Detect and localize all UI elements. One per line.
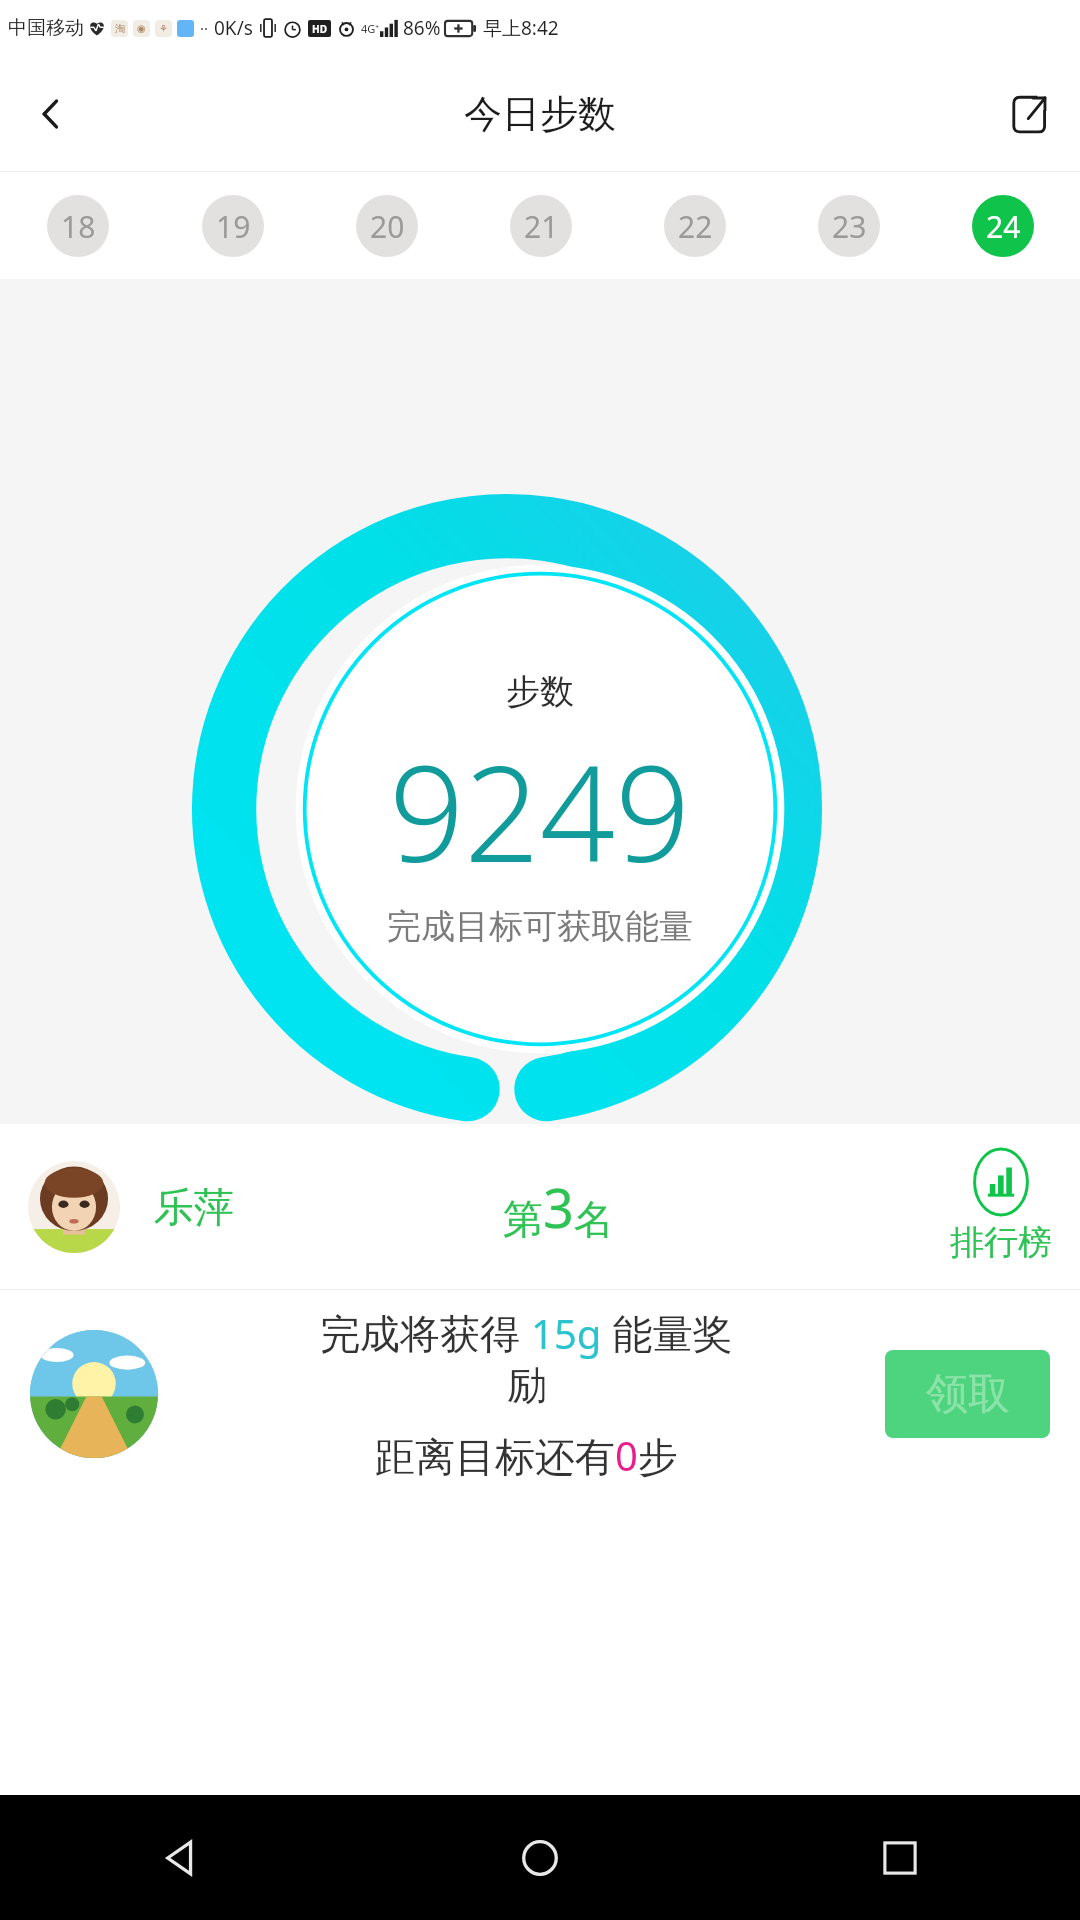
staticText: 24 — [986, 206, 1021, 247]
staticText: 领取 — [926, 1368, 1010, 1421]
button[interactable]: 领取 — [885, 1350, 1050, 1438]
staticText: 20 — [370, 206, 405, 247]
staticText: ◉ — [137, 23, 146, 35]
button[interactable]: 23 — [818, 195, 880, 257]
staticText: 步 — [638, 1432, 678, 1482]
button[interactable]: 排行榜 — [950, 1149, 1052, 1264]
button[interactable]: 21 — [510, 195, 572, 257]
staticText: 距离目标还有 — [375, 1432, 615, 1482]
button[interactable]: Home — [360, 1795, 720, 1920]
staticText: 第 — [503, 1194, 543, 1244]
staticText: 淘 — [115, 22, 125, 35]
staticText: 22 — [678, 206, 713, 247]
staticText: 23 — [832, 206, 867, 247]
staticText: 15g — [531, 1306, 602, 1360]
staticText: 3 — [543, 1170, 574, 1244]
staticText: 能量奖 — [602, 1305, 733, 1360]
staticText: 21 — [524, 206, 559, 247]
staticText: HD — [312, 22, 327, 36]
button[interactable]: Back — [0, 1795, 360, 1920]
staticText: ⚘ — [159, 23, 168, 35]
staticText: 0 — [615, 1428, 638, 1482]
button[interactable]: Recent apps — [720, 1795, 1080, 1920]
staticText: 9249 — [389, 721, 691, 901]
staticText: 中国移动 — [8, 16, 84, 40]
staticText: 名 — [574, 1194, 614, 1244]
staticText: 今日步数 — [464, 90, 616, 138]
button[interactable]: 22 — [664, 195, 726, 257]
staticText: 18 — [61, 206, 96, 247]
staticText: 乐萍 — [154, 1182, 234, 1232]
button[interactable]: 24 — [972, 195, 1034, 257]
staticText: 励 — [507, 1360, 547, 1410]
staticText: 完成目标可获取能量 — [387, 905, 693, 948]
staticText: 0K/s — [214, 15, 253, 41]
staticText: 排行榜 — [950, 1221, 1052, 1264]
staticText: 步数 — [506, 670, 574, 713]
staticText: 早上8:42 — [483, 15, 559, 41]
button[interactable]: Share — [996, 81, 1062, 147]
button[interactable]: 19 — [202, 195, 264, 257]
staticText: 完成将获得 — [320, 1305, 531, 1360]
staticText: 86% — [403, 15, 441, 41]
button[interactable]: 20 — [356, 195, 418, 257]
staticText: 19 — [216, 206, 251, 247]
button[interactable]: Back — [18, 81, 84, 147]
staticText: 4G⁺ — [361, 21, 380, 36]
button[interactable]: 18 — [47, 195, 109, 257]
staticText: ·· — [200, 18, 209, 38]
